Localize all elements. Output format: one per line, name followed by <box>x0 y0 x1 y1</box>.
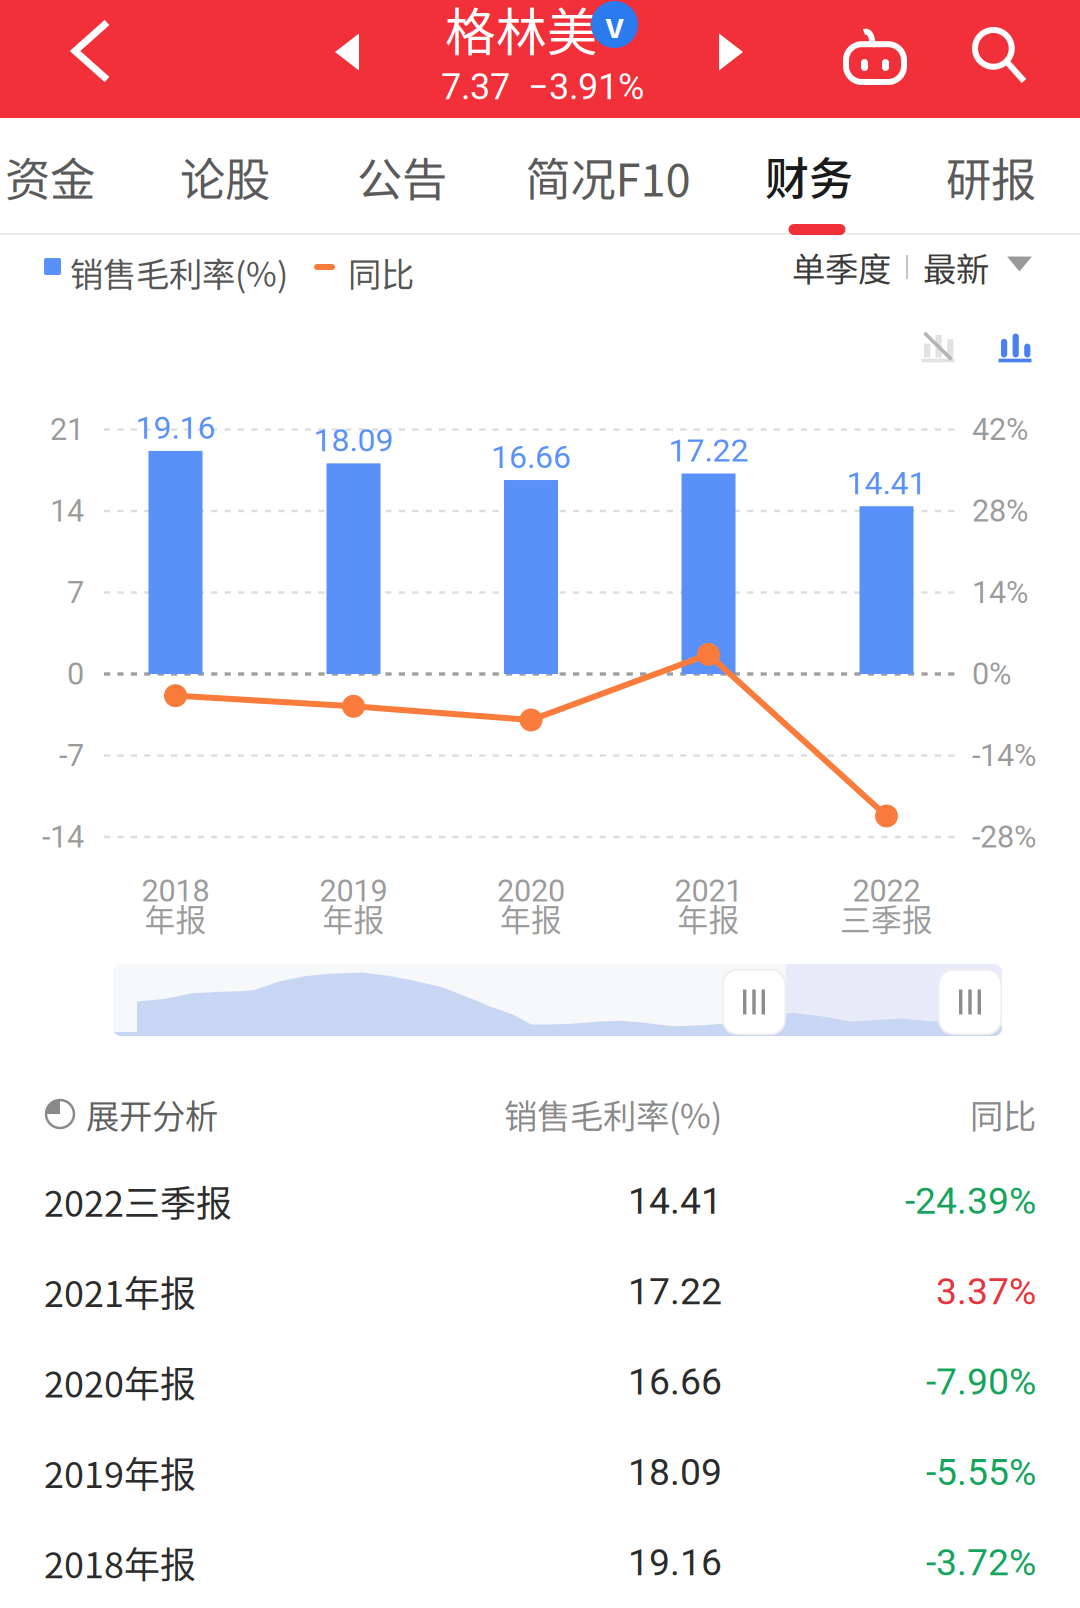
staticText: 28% <box>972 493 1028 529</box>
button[interactable]: Next stock <box>676 0 786 118</box>
button[interactable]: Back <box>26 0 156 118</box>
button[interactable]: 单季度 <box>792 239 1032 295</box>
staticText: 0% <box>972 656 1011 692</box>
staticText: 17.22 <box>668 432 748 469</box>
staticText: 2020 <box>497 873 565 909</box>
staticText: 7.37 −3.91% <box>441 66 644 108</box>
staticText: v <box>605 0 624 48</box>
button[interactable]: Expand analysis <box>44 1081 218 1147</box>
staticText: 单季度 <box>792 243 891 291</box>
staticText: 三季报 <box>840 896 933 940</box>
button[interactable]: 公告 <box>314 118 490 235</box>
staticText: -14 <box>42 819 84 855</box>
staticText: 销售毛利率(%) <box>504 1090 722 1138</box>
staticText: 2021 <box>674 873 742 909</box>
staticText: 财务 <box>765 144 853 208</box>
staticText: 19.16 <box>135 409 215 447</box>
button[interactable]: 资金 <box>0 118 138 235</box>
staticText: 2019 <box>319 873 387 909</box>
staticText: -7.90% <box>926 1360 1036 1404</box>
button[interactable]: Previous stock <box>292 0 402 118</box>
button[interactable]: 2021年报 <box>0 1246 1080 1336</box>
button[interactable]: Range handle <box>722 969 786 1035</box>
staticText: 年报 <box>144 896 206 940</box>
staticText: 2019年报 <box>44 1446 196 1498</box>
staticText: 3.37% <box>936 1269 1036 1313</box>
button[interactable]: 2019年报 <box>0 1427 1080 1517</box>
button[interactable]: 2018年报 <box>0 1518 1080 1608</box>
staticText: 简况F10 <box>525 144 690 210</box>
staticText: 2022 <box>852 873 920 909</box>
staticText: 同比 <box>970 1090 1036 1138</box>
button[interactable]: 财务 <box>721 118 897 235</box>
staticText: 18.09 <box>313 422 393 459</box>
staticText: 16.66 <box>491 438 571 476</box>
staticText: 展开分析 <box>86 1090 218 1138</box>
staticText: 资金 <box>5 144 95 210</box>
staticText: 2020年报 <box>44 1356 196 1408</box>
staticText: 18.09 <box>628 1450 722 1494</box>
staticText: -3.72% <box>926 1541 1036 1584</box>
staticText: 研报 <box>946 144 1036 210</box>
staticText: 最新 <box>923 243 989 291</box>
button[interactable]: 2022三季报 <box>0 1156 1080 1246</box>
staticText: 2018 <box>141 873 209 909</box>
staticText: 16.66 <box>628 1360 722 1404</box>
button[interactable]: Assistant <box>820 2 930 120</box>
button[interactable]: Hide chart <box>900 314 976 380</box>
staticText: 21 <box>50 411 84 447</box>
staticText: 14.41 <box>846 464 926 502</box>
staticText: 7 <box>67 574 84 610</box>
button[interactable]: Range handle <box>938 969 1002 1035</box>
staticText: 同比 <box>348 248 414 296</box>
staticText: 年报 <box>500 896 562 940</box>
button[interactable]: Search <box>944 0 1054 118</box>
button[interactable]: 论股 <box>137 118 313 235</box>
staticText: 14% <box>972 574 1028 610</box>
staticText: 年报 <box>322 896 384 940</box>
staticText: -28% <box>972 819 1036 855</box>
button[interactable]: Bar chart <box>977 314 1053 380</box>
staticText: 19.16 <box>628 1541 722 1584</box>
staticText: 销售毛利率(%) <box>70 248 288 296</box>
staticText: 格林美 <box>445 0 598 66</box>
staticText: -24.39% <box>905 1179 1036 1223</box>
button[interactable]: 2020年报 <box>0 1337 1080 1427</box>
button[interactable]: 简况F10 <box>520 118 696 235</box>
staticText: 42% <box>972 411 1028 447</box>
staticText: -7 <box>59 737 84 773</box>
staticText: 年报 <box>677 896 739 940</box>
staticText: 公告 <box>357 144 447 210</box>
staticText: 0 <box>67 656 84 692</box>
staticText: 论股 <box>180 144 270 210</box>
staticText: -14% <box>972 737 1036 773</box>
staticText: 14 <box>50 493 84 529</box>
staticText: 14.41 <box>628 1179 722 1223</box>
staticText: 17.22 <box>628 1269 722 1313</box>
staticText: 2022三季报 <box>44 1175 232 1227</box>
staticText: 2018年报 <box>44 1536 196 1589</box>
button[interactable]: 研报 <box>903 118 1079 235</box>
staticText: 2021年报 <box>44 1265 196 1317</box>
staticText: -5.55% <box>926 1450 1036 1494</box>
